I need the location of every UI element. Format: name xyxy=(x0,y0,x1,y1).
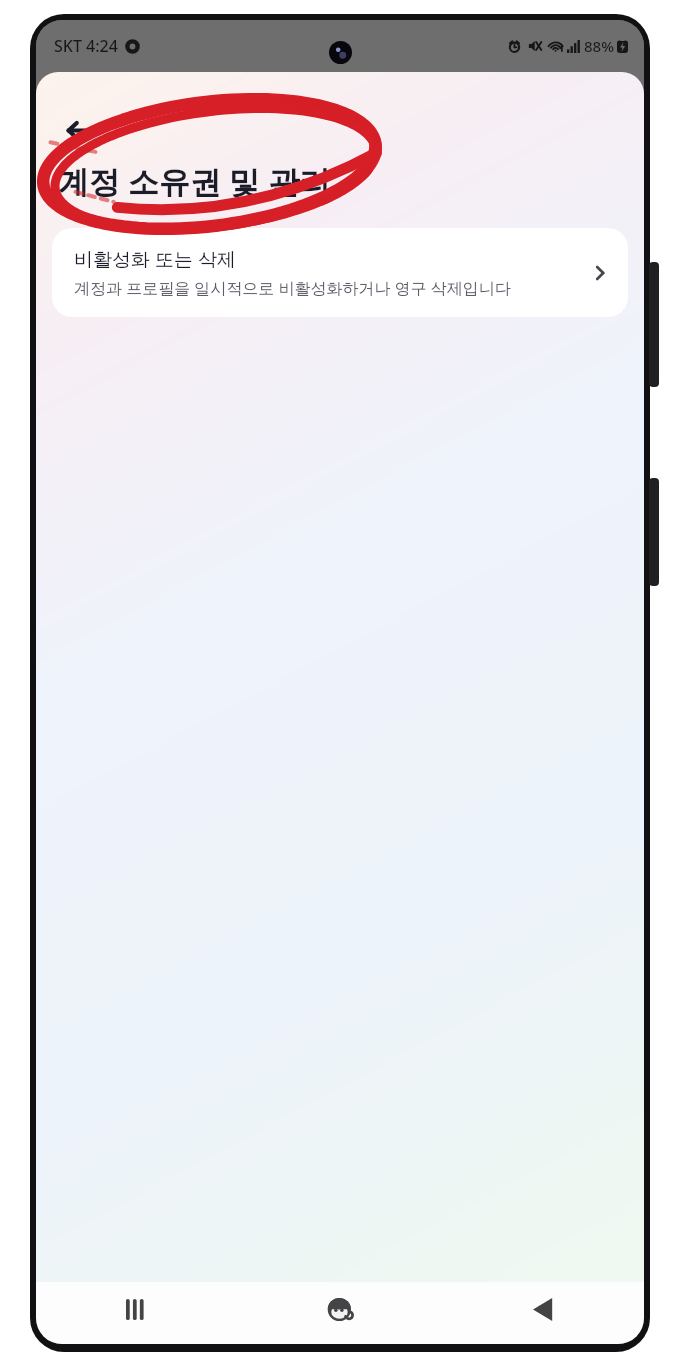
staticText: 비활성화 또는 삭제 xyxy=(74,246,236,272)
button[interactable]: Recents xyxy=(110,1282,164,1336)
staticText: 88% xyxy=(584,36,614,56)
staticText: 계정과 프로필을 일시적으로 비활성화하거나 영구 삭제입니다 xyxy=(74,277,511,299)
staticText: SKT 4:24 xyxy=(54,35,118,57)
button[interactable]: Back xyxy=(516,1282,570,1336)
button[interactable]: Home xyxy=(313,1282,367,1336)
staticText: 계정 소유권 및 관리 xyxy=(58,160,331,202)
button[interactable]: 비활성화 또는 삭제 xyxy=(52,228,628,317)
button[interactable]: Back xyxy=(56,106,104,154)
